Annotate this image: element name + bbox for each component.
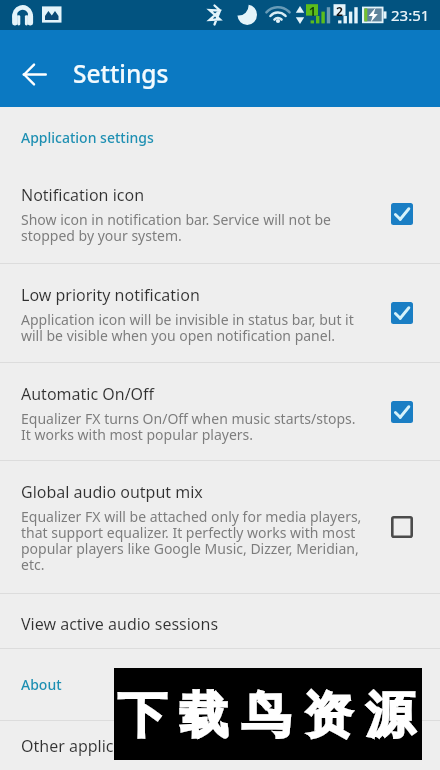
button[interactable]: Enabled, checked <box>364 287 440 339</box>
button[interactable]: Low priority notification <box>0 264 440 362</box>
button[interactable]: Disabled, unchecked <box>364 501 440 553</box>
button[interactable]: Enabled, checked <box>364 386 440 438</box>
staticText: Equalizer FX turns On/Off when music sta… <box>21 409 362 444</box>
staticText: Equalizer FX will be attached only for m… <box>21 507 362 574</box>
staticText: Other applications <box>21 735 160 756</box>
staticText: 23:51 <box>391 5 430 25</box>
staticText: Application settings <box>21 128 154 147</box>
staticText: Notification icon <box>21 184 145 206</box>
button[interactable]: Automatic On/Off <box>0 363 440 460</box>
button[interactable]: View active audio sessions <box>0 594 440 648</box>
staticText: Global audio output mix <box>21 481 203 503</box>
staticText: 下载鸟资源 <box>111 685 419 747</box>
staticText: View active audio sessions <box>21 613 219 635</box>
staticText: Show icon in notification bar. Service w… <box>21 210 362 245</box>
button[interactable]: Enabled, checked <box>364 188 440 240</box>
button[interactable]: Global audio output mix <box>0 461 440 593</box>
staticText: 2 <box>336 3 343 19</box>
staticText: Automatic On/Off <box>21 383 155 405</box>
staticText: About <box>21 675 62 694</box>
staticText: Application icon will be invisible in st… <box>21 310 362 345</box>
staticText: 1 <box>309 3 316 19</box>
staticText: Low priority notification <box>21 284 200 306</box>
button[interactable]: Other applications <box>0 721 440 770</box>
button[interactable]: Notification icon <box>0 184 440 263</box>
button[interactable]: Back <box>9 49 59 99</box>
staticText: Settings <box>73 57 169 90</box>
